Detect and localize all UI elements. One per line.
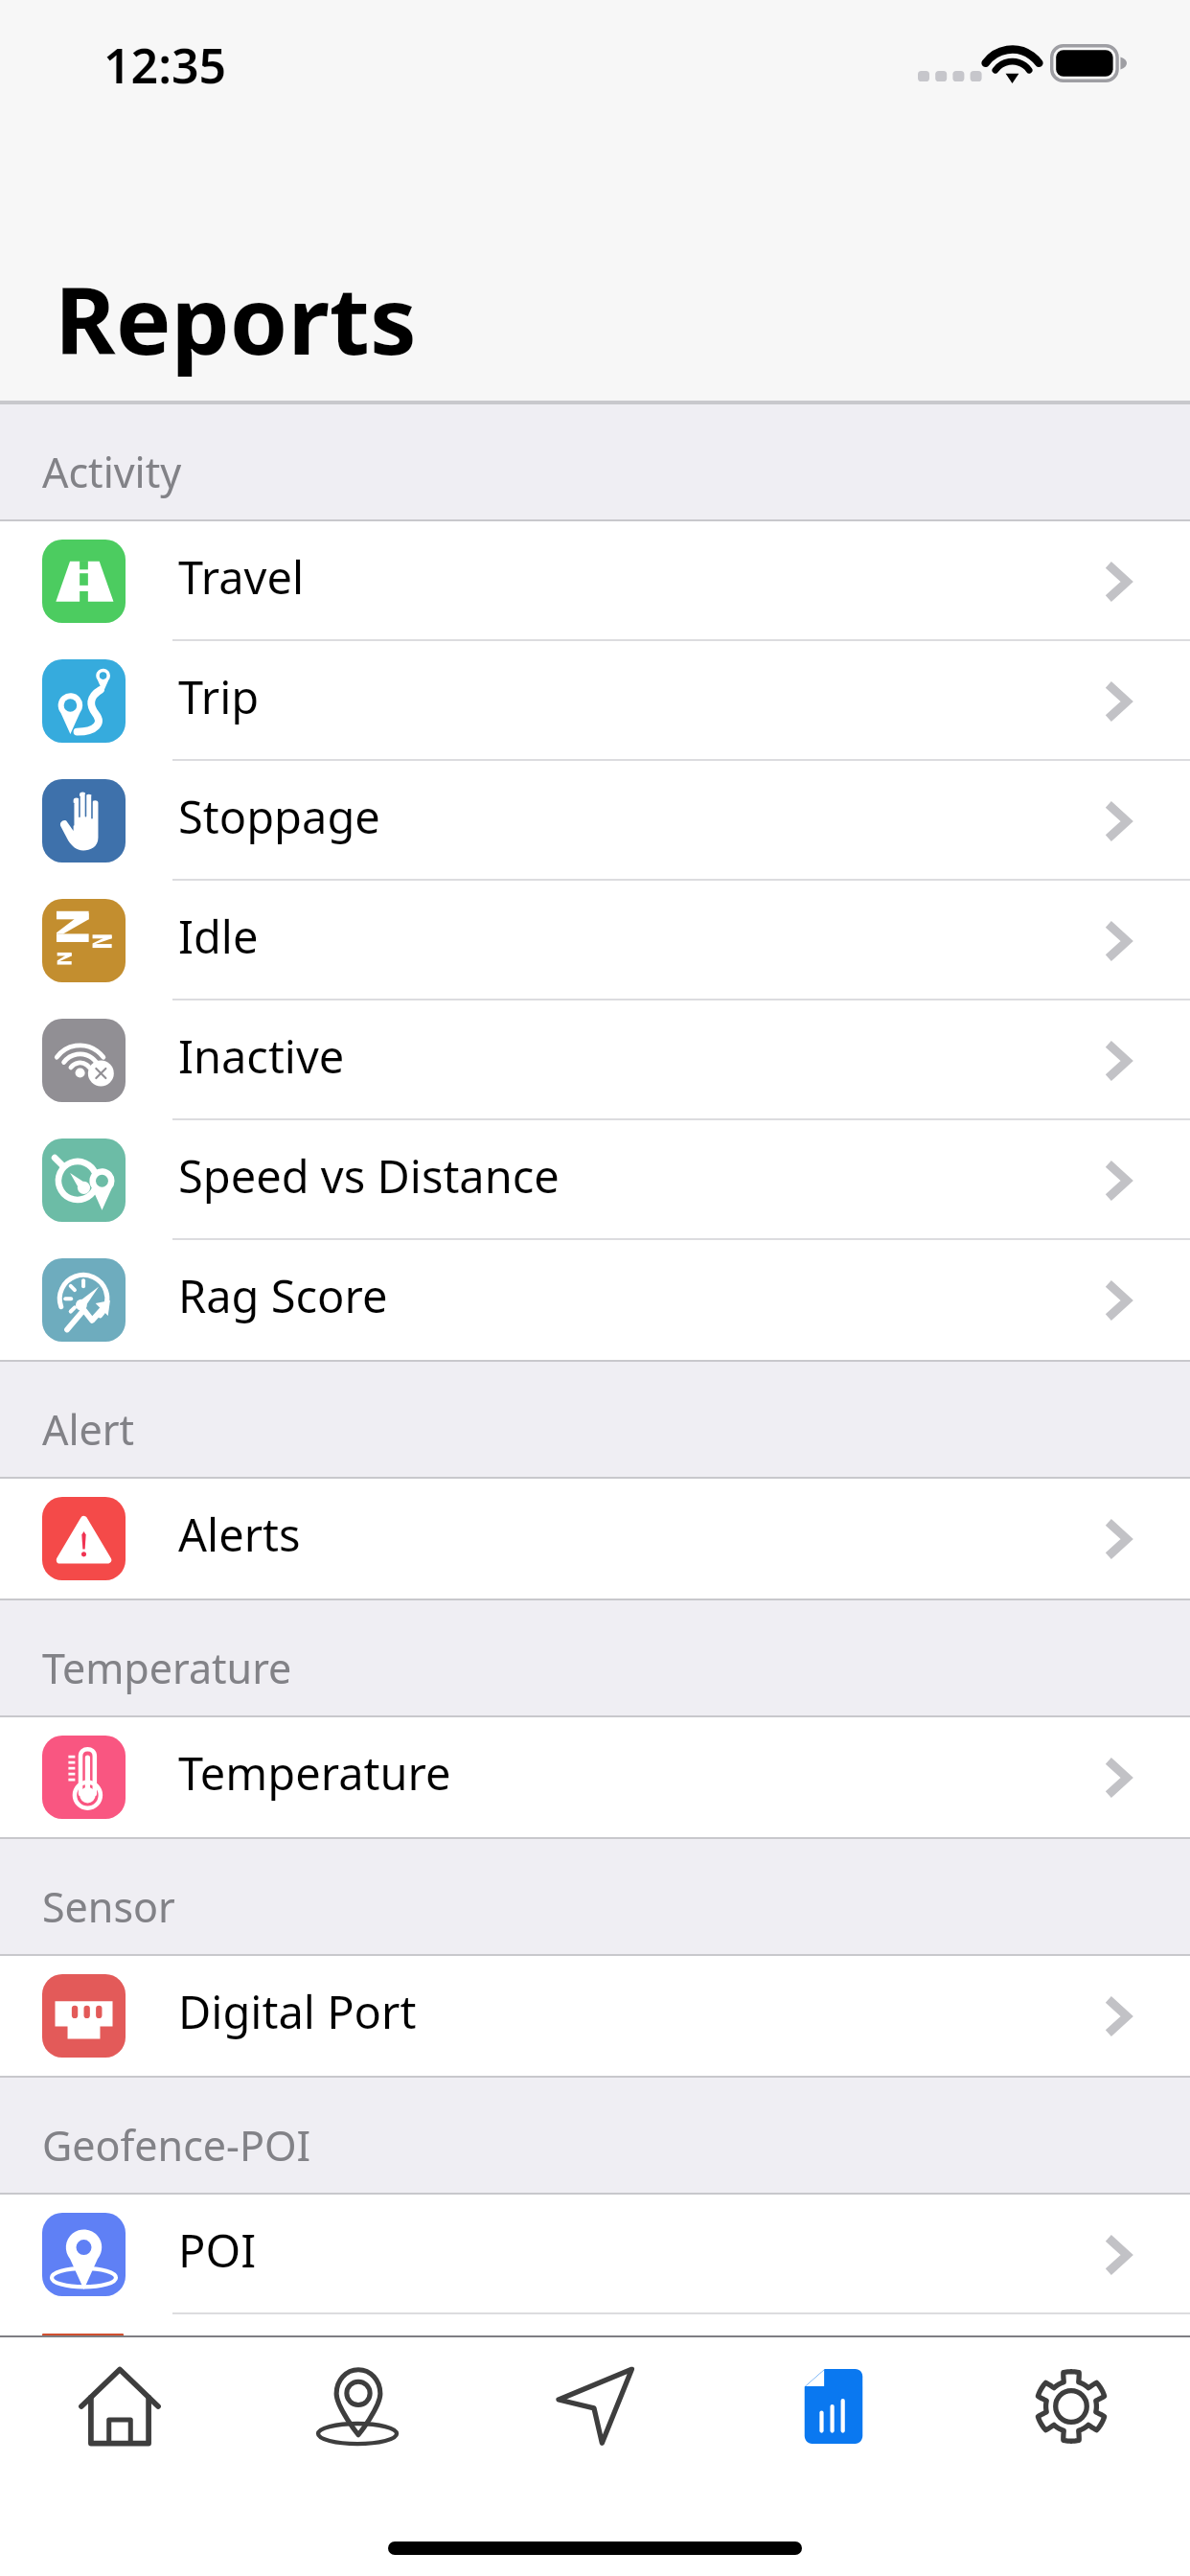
staticText: Geofence-POI — [42, 2117, 311, 2173]
staticText: Digital Port — [178, 1981, 417, 2042]
button[interactable]: Temperature — [0, 1717, 1190, 1837]
staticText: POI — [178, 2219, 257, 2281]
button[interactable]: Rag Score — [0, 1240, 1190, 1360]
button[interactable]: Stoppage — [0, 761, 1190, 881]
button[interactable]: Speed vs Distance — [0, 1120, 1190, 1240]
button[interactable]: Home — [0, 2335, 239, 2476]
staticText: Stoppage — [178, 786, 380, 847]
button[interactable]: Travel — [0, 521, 1190, 641]
button[interactable]: Alerts — [0, 1479, 1190, 1598]
button[interactable]: Inactive — [0, 1000, 1190, 1120]
staticText: Alert — [42, 1401, 135, 1458]
staticText: 12:35 — [103, 33, 227, 98]
staticText: Activity — [42, 444, 182, 500]
staticText: Temperature — [178, 1742, 451, 1804]
staticText: Speed vs Distance — [178, 1145, 560, 1207]
button[interactable]: Settings — [952, 2335, 1190, 2476]
staticText: Inactive — [178, 1025, 345, 1087]
staticText: Temperature — [42, 1640, 292, 1696]
staticText: Idle — [178, 906, 259, 967]
staticText: Alerts — [178, 1504, 301, 1565]
button[interactable]: POI — [0, 2195, 1190, 2314]
button[interactable]: Places — [239, 2335, 477, 2476]
button[interactable]: Navigate — [477, 2335, 715, 2476]
button[interactable]: Reports — [715, 2335, 952, 2476]
staticText: Sensor — [42, 1878, 175, 1935]
button[interactable]: Trip — [0, 641, 1190, 761]
staticText: Rag Score — [178, 1265, 388, 1326]
staticText: Travel — [178, 546, 305, 608]
button[interactable]: Digital Port — [0, 1956, 1190, 2076]
button[interactable]: Idle — [0, 881, 1190, 1000]
staticText: Reports — [55, 255, 417, 381]
staticText: Trip — [178, 666, 260, 727]
